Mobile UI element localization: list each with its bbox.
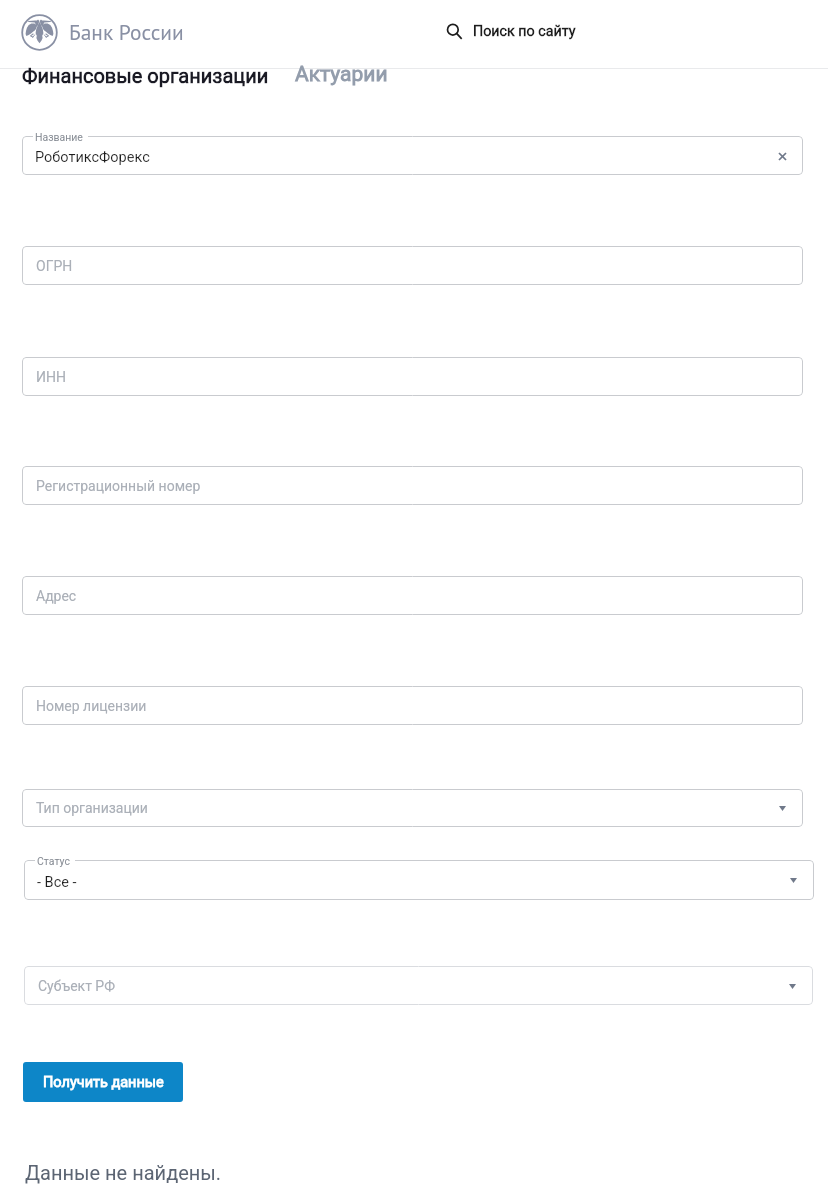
staticText: - Все - [37,874,77,891]
staticText: РоботиксФорекс [35,149,150,166]
button[interactable]: Субъект РФ [24,966,813,1005]
staticText: Статус [37,855,70,867]
staticText: Тип организации [36,800,148,816]
staticText: Адрес [36,588,77,604]
staticText: ОГРН [36,258,73,274]
staticText: Субъект РФ [38,978,116,994]
staticText: Банк России [69,18,184,46]
button[interactable]: ОГРН [22,246,803,285]
button[interactable]: Тип организации [22,789,803,827]
staticText: Номер лицензии [36,698,147,714]
button[interactable]: Поиск по сайту [447,23,576,40]
staticText: Данные не найдены. [25,1161,222,1184]
button[interactable]: - Все - [24,860,814,900]
button[interactable]: Выбрать [785,979,799,993]
button[interactable]: Очистить [773,147,791,165]
button[interactable]: Выбрать [775,801,789,815]
button[interactable]: Актуарии [295,62,388,87]
button[interactable]: ИНН [22,357,803,396]
staticText: Регистрационный номер [36,478,201,494]
button[interactable]: РоботиксФорекс [22,136,803,175]
button[interactable]: Регистрационный номер [22,466,803,505]
staticText: Название [35,131,83,143]
button[interactable]: Получить данные [23,1062,183,1102]
button[interactable]: Номер лицензии [22,686,803,725]
staticText: ИНН [36,369,66,385]
staticText: Поиск по сайту [473,23,576,40]
button[interactable]: Адрес [22,576,803,615]
staticText: Получить данные [43,1074,164,1091]
button[interactable]: Банк России [21,14,58,51]
button[interactable]: Финансовые организации [22,64,269,87]
button[interactable]: Выбрать [786,873,800,887]
